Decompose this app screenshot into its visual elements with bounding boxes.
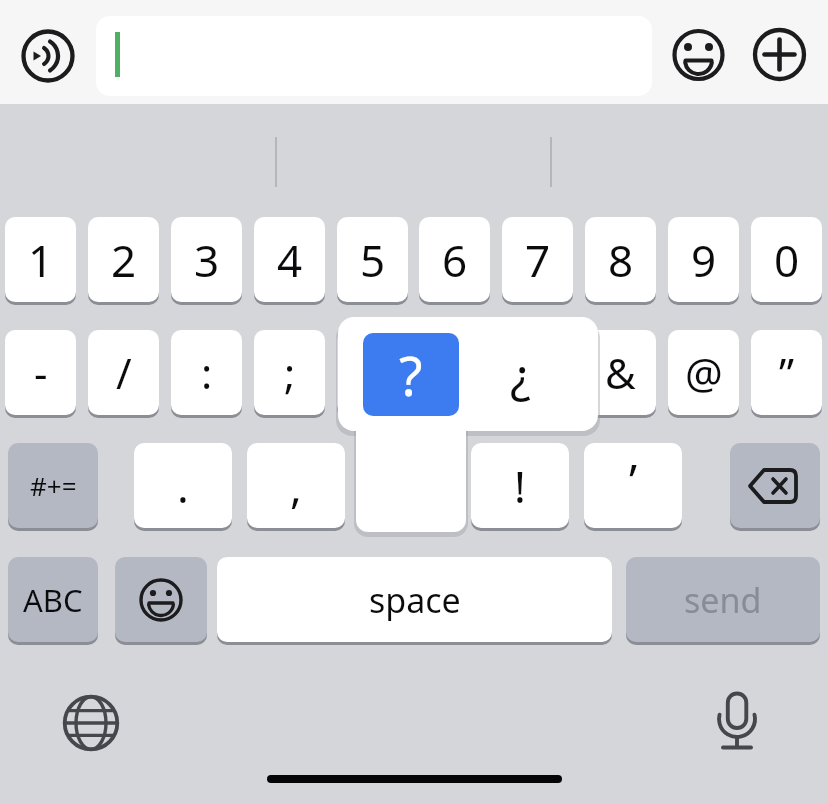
button[interactable] — [21, 28, 77, 84]
staticText: 2 — [111, 230, 137, 290]
staticText: ! — [514, 456, 526, 516]
button[interactable]: ( — [337, 330, 408, 415]
staticText: 4 — [277, 230, 303, 290]
button[interactable] — [753, 28, 806, 81]
button[interactable]: & — [585, 330, 656, 415]
staticText: ¿ — [510, 342, 531, 407]
button[interactable] — [672, 29, 725, 82]
button[interactable] — [115, 557, 207, 642]
staticText: 0 — [774, 230, 800, 290]
staticText: @ — [685, 344, 723, 401]
staticText: & — [605, 344, 636, 401]
staticText: : — [201, 344, 213, 401]
button[interactable] — [730, 443, 820, 528]
button[interactable]: space — [217, 557, 612, 642]
staticText: 3 — [194, 230, 220, 290]
button[interactable]: ¿ — [480, 333, 560, 416]
button[interactable]: - — [5, 330, 76, 415]
button[interactable]: 8 — [585, 217, 656, 302]
button[interactable]: 1 — [5, 217, 76, 302]
staticText: space — [369, 577, 461, 623]
button[interactable]: 4 — [254, 217, 325, 302]
button[interactable]: / — [88, 330, 159, 415]
staticText: / — [116, 344, 132, 401]
staticText: 7 — [525, 230, 551, 290]
staticText: ) — [448, 344, 461, 401]
button[interactable]: , — [247, 443, 345, 528]
staticText: ” — [779, 344, 795, 401]
button[interactable] — [61, 693, 121, 753]
button[interactable]: : — [171, 330, 242, 415]
button[interactable]: ’ — [584, 443, 682, 528]
button[interactable]: ; — [254, 330, 325, 415]
button[interactable] — [96, 16, 652, 96]
staticText: 5 — [360, 230, 386, 290]
button[interactable]: 7 — [502, 217, 573, 302]
staticText: 8 — [608, 230, 634, 290]
button[interactable]: 5 — [337, 217, 408, 302]
button[interactable]: ” — [751, 330, 822, 415]
button[interactable]: 0 — [751, 217, 822, 302]
button[interactable]: . — [134, 443, 232, 528]
staticText: send — [684, 577, 762, 623]
staticText: 6 — [442, 230, 468, 290]
button[interactable]: @ — [668, 330, 739, 415]
button[interactable] — [707, 690, 767, 754]
button[interactable]: $ — [502, 330, 573, 415]
staticText: ; — [284, 344, 296, 401]
staticText: - — [34, 344, 48, 401]
staticText: ’ — [629, 449, 638, 512]
staticText: #+= — [30, 468, 77, 503]
button[interactable]: send — [626, 557, 820, 642]
staticText: 9 — [691, 230, 717, 290]
staticText: , — [290, 456, 302, 516]
staticText: . — [177, 456, 189, 516]
button[interactable]: 9 — [668, 217, 739, 302]
staticText: 1 — [28, 230, 54, 290]
staticText: ABC — [23, 579, 83, 621]
staticText: ? — [399, 338, 423, 412]
button[interactable]: ABC — [8, 557, 98, 642]
button[interactable]: #+= — [8, 443, 98, 528]
button[interactable]: 2 — [88, 217, 159, 302]
button[interactable]: ? — [363, 333, 459, 416]
button[interactable]: 6 — [419, 217, 490, 302]
button[interactable]: 3 — [171, 217, 242, 302]
button[interactable]: ! — [471, 443, 569, 528]
button[interactable]: ) — [419, 330, 490, 415]
staticText: $ — [525, 344, 550, 401]
